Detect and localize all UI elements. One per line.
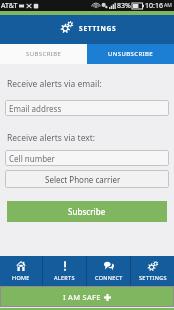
staticText: SUBSCRIBE	[26, 50, 62, 58]
button[interactable]: CONNECT	[87, 256, 130, 286]
staticText: I AM SAFE	[63, 292, 101, 302]
button[interactable]: SETTINGS	[131, 256, 174, 286]
button[interactable]: SUBSCRIBE	[0, 44, 87, 64]
staticText: HOME	[12, 274, 30, 281]
staticText: AM	[164, 2, 172, 9]
button[interactable]: Cell number	[5, 150, 169, 166]
button[interactable]: ALERTS	[43, 256, 86, 286]
button[interactable]: HOME	[0, 256, 42, 286]
staticText: 83%	[117, 1, 131, 11]
staticText: AT&T	[1, 1, 18, 11]
button[interactable]: Subscribe	[7, 201, 167, 222]
staticText: Email address	[9, 103, 62, 114]
button[interactable]: UNSUBSCRIBE	[87, 44, 174, 64]
staticText: CONNECT	[95, 274, 123, 281]
staticText: Cell number	[9, 153, 55, 164]
staticText: ALERTS	[54, 274, 75, 281]
staticText: Receive alerts via email:	[7, 78, 102, 90]
staticText: 10:16	[145, 1, 163, 11]
staticText: SETTINGS	[79, 24, 117, 33]
staticText: Subscribe	[68, 206, 106, 217]
button[interactable]: Select Phone carrier	[5, 170, 169, 188]
staticText: Receive alerts via text:	[7, 132, 96, 144]
staticText: UNSUBSCRIBE	[108, 50, 154, 58]
staticText: SETTINGS	[139, 274, 167, 281]
staticText: Select Phone carrier	[45, 174, 121, 185]
button[interactable]: I AM SAFE	[1, 287, 173, 306]
button[interactable]: Email address	[5, 100, 169, 116]
